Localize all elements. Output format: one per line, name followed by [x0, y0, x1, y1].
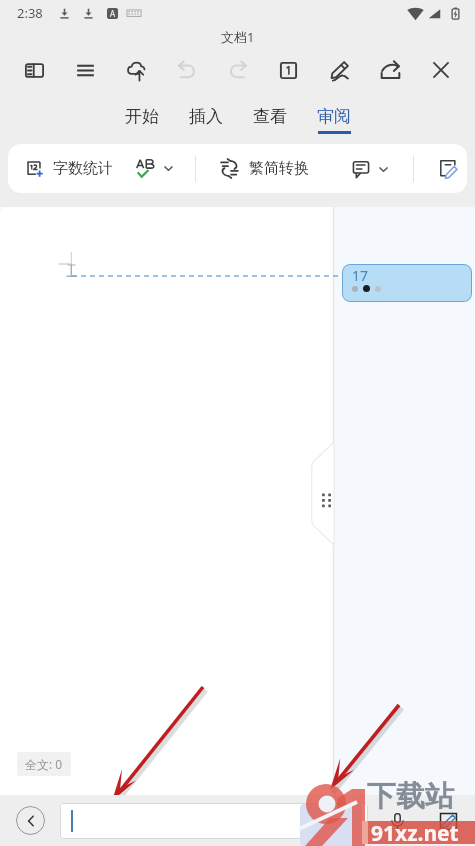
button[interactable]: Menu	[68, 53, 102, 87]
button[interactable]: Annotate	[322, 53, 356, 87]
button[interactable]: Voice input	[382, 806, 412, 836]
staticText: 文档1	[221, 28, 255, 46]
button[interactable]: Close	[424, 53, 458, 87]
button[interactable]: 繁简转换	[220, 159, 309, 178]
button[interactable]	[352, 160, 388, 178]
button[interactable]: 全文: 0	[17, 752, 71, 776]
button[interactable]: 审阅	[317, 92, 351, 134]
button[interactable]: Redo	[221, 53, 255, 87]
button[interactable]: Drag panel divider	[310, 442, 334, 545]
button[interactable]: Edit document	[438, 159, 458, 179]
staticText: 17	[352, 266, 369, 285]
button[interactable]: Upload to cloud	[119, 53, 153, 87]
staticText: 插入	[189, 106, 223, 127]
button[interactable]	[136, 159, 173, 178]
staticText: 字数统计	[53, 159, 113, 178]
button[interactable]: Outline panel	[17, 53, 51, 87]
staticText: 下载站	[367, 778, 454, 815]
button[interactable]: Page view	[271, 53, 305, 87]
staticText: 2:38	[17, 4, 43, 22]
button[interactable]: Handwriting input	[433, 806, 463, 836]
button[interactable]: Undo	[170, 53, 204, 87]
button[interactable]: 17	[342, 264, 472, 302]
button[interactable]: Back	[16, 806, 45, 835]
staticText: 全文: 0	[25, 756, 63, 772]
button[interactable]	[60, 803, 368, 839]
button[interactable]: 字数统计	[26, 159, 113, 178]
staticText: 繁简转换	[249, 159, 309, 178]
staticText: 审阅	[317, 106, 351, 127]
button[interactable]: Share	[373, 53, 407, 87]
staticText: 查看	[253, 106, 287, 127]
staticText: 91xz.net	[371, 819, 459, 846]
button[interactable]: 插入	[189, 92, 223, 134]
button[interactable]: 查看	[253, 92, 287, 134]
staticText: 开始	[125, 106, 159, 127]
button[interactable]: 开始	[125, 92, 159, 134]
staticText: A	[110, 8, 116, 19]
